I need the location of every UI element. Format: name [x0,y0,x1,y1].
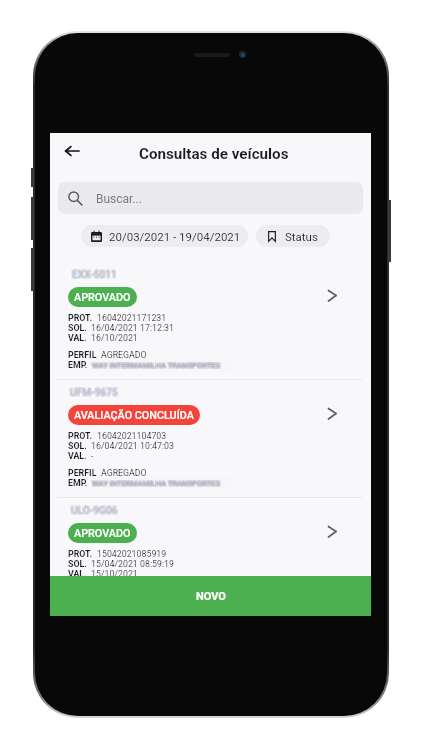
staticText: WAY INTERMAMILHA TRANSPORTES [92,597,221,606]
staticText: 16042021171231 [97,313,167,323]
button[interactable]: Details [328,290,336,301]
staticText: ULO-9G06 [71,504,118,515]
staticText: WAY INTERMAMILHA TRANSPORTES [92,598,221,607]
staticText: WAY INTERMAMILHA TRANSPORTES [93,598,222,607]
button[interactable]: NOVO [50,576,371,616]
staticText: EXX-5011 [71,269,116,280]
staticText: WAY INTERMAMILHA TRANSPORTES [93,479,222,488]
staticText: ULO-9G06 [72,505,119,516]
staticText: UFM-9675 [69,387,117,398]
staticText: WAY INTERMAMILHA TRANSPORTES [93,597,222,606]
staticText: AGREGADO [101,350,147,360]
staticText: UFM-9675 [71,387,119,398]
staticText: NOVO [196,590,226,603]
staticText: UFM-9675 [70,386,118,397]
staticText: AGREGADO [101,468,147,478]
staticText: ULO-9G06 [70,506,117,517]
button[interactable]: Details [328,408,336,419]
button[interactable]: UFM-9675 [50,380,371,497]
staticText: SOL. [68,441,87,451]
staticText: WAY INTERMAMILHA TRANSPORTES [91,478,220,487]
staticText: WAY INTERMAMILHA TRANSPORTES [91,480,220,489]
staticText: WAY INTERMAMILHA TRANSPORTES [91,597,220,606]
staticText: EXX-5011 [71,268,116,279]
staticText: WAY INTERMAMILHA TRANSPORTES [93,596,222,605]
staticText: ULO-9G06 [71,506,118,517]
button[interactable]: EXX-5011 [50,262,371,379]
staticText: - [91,451,94,461]
staticText: ULO-9G06 [71,505,118,516]
staticText: WAY INTERMAMILHA TRANSPORTES [93,480,222,489]
staticText: EXX-5011 [72,270,117,281]
staticText: WAY INTERMAMILHA TRANSPORTES [91,360,220,369]
staticText: PERFIL [68,350,97,360]
staticText: VAL. [68,451,87,461]
button[interactable]: ULO-9G06 [50,498,371,615]
staticText: 15042021085919 [97,549,167,559]
button[interactable]: Back [57,136,87,166]
staticText: WAY INTERMAMILHA TRANSPORTES [93,362,222,371]
staticText: WAY INTERMAMILHA TRANSPORTES [93,360,222,369]
staticText: PROT. [68,549,93,559]
staticText: EXX-5011 [71,270,116,281]
staticText: UFM-9675 [70,387,118,398]
staticText: WAY INTERMAMILHA TRANSPORTES [92,596,221,605]
staticText: UFM-9675 [69,388,117,399]
staticText: WAY INTERMAMILHA TRANSPORTES [93,478,222,487]
staticText: PERFIL [68,468,97,478]
staticText: WAY INTERMAMILHA TRANSPORTES [91,596,220,605]
staticText: 16/10/2021 [91,333,138,343]
staticText: WAY INTERMAMILHA TRANSPORTES [92,479,221,488]
staticText: EMP. [68,360,88,370]
button[interactable]: Buscar... [58,182,363,214]
staticText: 16/04/2021 10:47:03 [91,441,174,451]
button[interactable]: Details [328,526,336,537]
staticText: EXX-5011 [73,269,118,280]
staticText: UFM-9675 [69,386,117,397]
staticText: ULO-9G06 [70,504,117,515]
staticText: VAL. [68,569,87,579]
staticText: PROT. [68,431,93,441]
staticText: Consultas de veículos [139,145,289,163]
staticText: ULO-9G06 [72,506,119,517]
staticText: WAY INTERMAMILHA TRANSPORTES [92,478,221,487]
staticText: APROVADO [74,527,131,540]
staticText: SOL. [68,323,87,333]
staticText: WAY INTERMAMILHA TRANSPORTES [91,479,220,488]
staticText: Status [285,230,318,243]
staticText: ULO-9G06 [72,504,119,515]
staticText: PROT. [68,313,93,323]
staticText: UFM-9675 [71,386,119,397]
staticText: APROVADO [74,291,131,304]
staticText: 15/10/2021 [91,569,138,579]
staticText: SOL. [68,559,87,569]
staticText: WAY INTERMAMILHA TRANSPORTES [92,480,221,489]
staticText: WAY INTERMAMILHA TRANSPORTES [92,362,221,371]
button[interactable]: Status [256,225,330,247]
staticText: 15/04/2021 08:59:19 [91,559,174,569]
button[interactable]: 20/03/2021 - 19/04/2021 [81,225,248,247]
staticText: WAY INTERMAMILHA TRANSPORTES [93,361,222,370]
staticText: EXX-5011 [73,268,118,279]
staticText: EXX-5011 [72,268,117,279]
staticText: UFM-9675 [71,388,119,399]
staticText: AVALIAÇÃO CONCLUÍDA [74,409,194,422]
staticText: WAY INTERMAMILHA TRANSPORTES [91,361,220,370]
staticText: Buscar... [96,192,142,206]
staticText: 20/03/2021 - 19/04/2021 [109,230,241,243]
staticText: WAY INTERMAMILHA TRANSPORTES [91,598,220,607]
staticText: WAY INTERMAMILHA TRANSPORTES [91,362,220,371]
staticText: 16042021104703 [97,431,167,441]
staticText: WAY INTERMAMILHA TRANSPORTES [92,360,221,369]
staticText: EXX-5011 [72,269,117,280]
staticText: UFM-9675 [70,388,118,399]
staticText: WAY INTERMAMILHA TRANSPORTES [92,361,221,370]
staticText: 16/04/2021 17:12:31 [91,323,174,333]
staticText: VAL. [68,333,87,343]
staticText: EMP. [68,478,88,488]
staticText: ULO-9G06 [70,505,117,516]
staticText: EXX-5011 [73,270,118,281]
